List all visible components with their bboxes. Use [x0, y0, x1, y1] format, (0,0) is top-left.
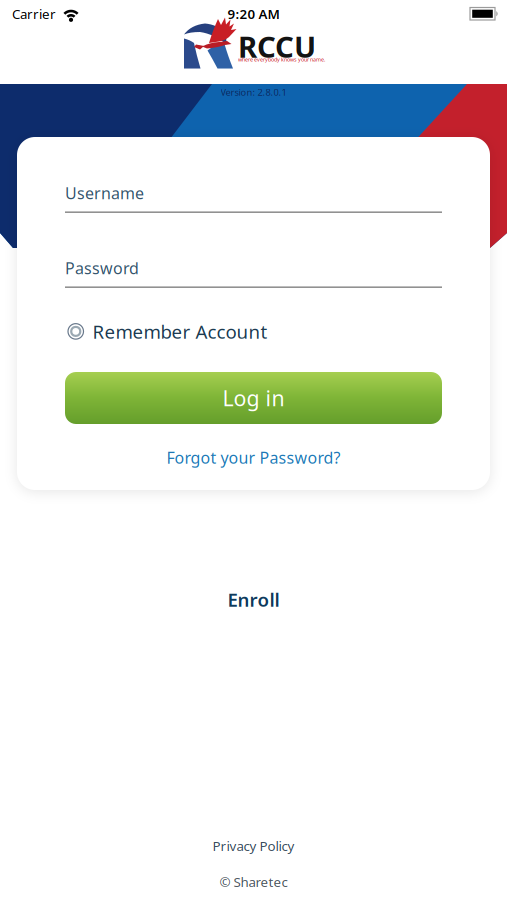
button[interactable]: Username: [65, 183, 442, 212]
button[interactable]: Privacy Policy: [212, 837, 294, 855]
staticText: Password: [65, 257, 139, 279]
staticText: RCCU: [238, 27, 316, 66]
staticText: 9:20 AM: [227, 5, 279, 23]
button[interactable]: Remember Account: [68, 319, 267, 344]
staticText: Enroll: [227, 587, 279, 612]
staticText: Forgot your Password?: [166, 447, 340, 468]
staticText: Privacy Policy: [212, 837, 294, 855]
staticText: Version: 2.8.0.1: [220, 86, 286, 98]
staticText: where everybody knows your name.: [238, 56, 325, 63]
staticText: Remember Account: [92, 319, 267, 344]
staticText: © Sharetec: [219, 873, 287, 891]
staticText: Username: [65, 182, 144, 204]
button[interactable]: Forgot your Password?: [166, 447, 340, 468]
button[interactable]: Password: [65, 258, 442, 287]
button[interactable]: Log in: [65, 372, 442, 424]
staticText: Carrier: [12, 5, 56, 23]
button[interactable]: Enroll: [227, 587, 279, 612]
staticText: Log in: [222, 384, 284, 412]
